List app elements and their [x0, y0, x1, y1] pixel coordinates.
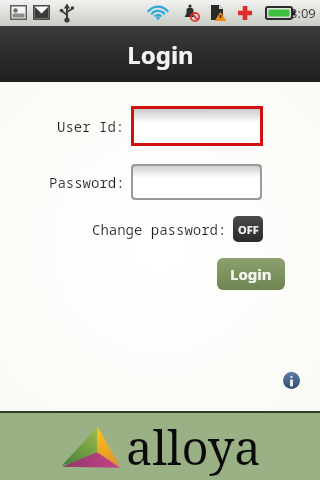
- button[interactable]: OFF: [233, 216, 263, 242]
- staticText: User Id:: [57, 117, 125, 136]
- button[interactable]: Information: [283, 372, 300, 389]
- button[interactable]: [133, 166, 260, 198]
- staticText: alloya: [126, 415, 261, 479]
- staticText: 3:09: [290, 4, 316, 22]
- staticText: OFF: [238, 222, 259, 237]
- staticText: Login: [127, 38, 194, 71]
- button[interactable]: [134, 109, 260, 143]
- staticText: Login: [230, 264, 272, 284]
- button[interactable]: Login: [217, 258, 285, 290]
- staticText: Change password:: [92, 220, 227, 239]
- staticText: Password:: [49, 173, 125, 192]
